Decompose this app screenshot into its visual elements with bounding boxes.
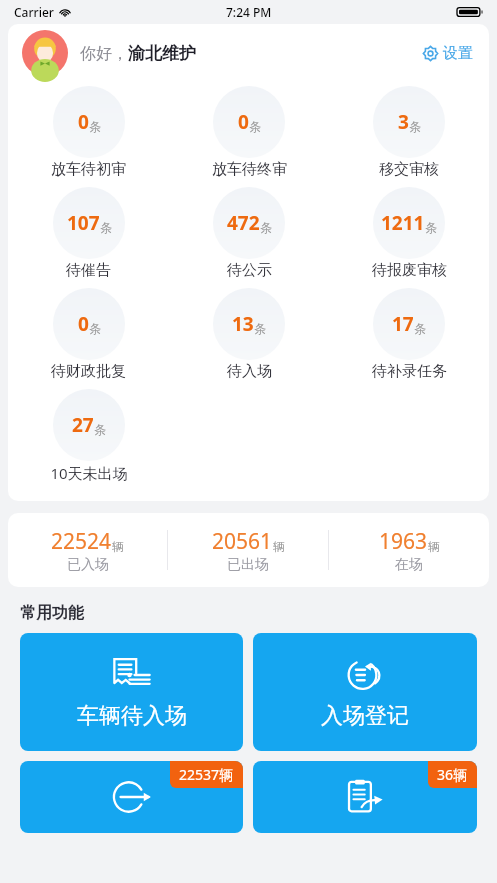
button[interactable]: 3 (329, 82, 489, 183)
staticText: 已入场 (67, 556, 109, 574)
staticText: 辆 (273, 539, 285, 554)
staticText: 条 (100, 220, 112, 235)
staticText: 设置 (443, 44, 473, 63)
button[interactable]: 0 (8, 284, 169, 385)
staticText: 3 (398, 109, 409, 135)
button[interactable]: 472 (169, 183, 329, 284)
staticText: 1963 (379, 527, 428, 556)
button[interactable]: 1211 (329, 183, 489, 284)
button[interactable]: 设置 (420, 40, 475, 67)
staticText: 107 (67, 210, 100, 236)
staticText: 条 (249, 119, 261, 134)
button[interactable]: 22524 (8, 527, 167, 574)
staticText: 条 (89, 321, 101, 336)
staticText: 你好， (80, 44, 128, 64)
staticText: 7:24 PM (226, 4, 272, 20)
staticText: 27 (72, 412, 94, 438)
staticText: 22524 (51, 527, 112, 556)
staticText: 待财政批复 (51, 362, 126, 381)
button[interactable]: 20561 (168, 527, 328, 574)
button[interactable]: 107 (8, 183, 169, 284)
staticText: 20561 (212, 527, 273, 556)
button[interactable]: 27 (8, 385, 169, 487)
staticText: 入场登记 (321, 702, 409, 730)
staticText: 条 (409, 119, 421, 134)
staticText: 0 (78, 311, 89, 337)
staticText: 待催告 (66, 261, 111, 280)
button[interactable]: 17 (329, 284, 489, 385)
staticText: 条 (260, 220, 272, 235)
staticText: 条 (414, 321, 426, 336)
button[interactable]: Function 36辆 (253, 761, 477, 833)
staticText: 待公示 (227, 261, 272, 280)
staticText: 在场 (395, 556, 423, 574)
staticText: 条 (89, 119, 101, 134)
staticText: 放车待初审 (51, 160, 126, 179)
staticText: 待补录任务 (372, 362, 447, 381)
staticText: 条 (425, 220, 437, 235)
staticText: 22537辆 (179, 765, 234, 784)
staticText: 移交审核 (379, 160, 439, 179)
staticText: 1211 (381, 210, 425, 236)
staticText: 车辆待入场 (77, 702, 187, 730)
button[interactable]: 0 (8, 82, 169, 183)
staticText: 已出场 (227, 556, 269, 574)
staticText: 条 (94, 422, 106, 437)
staticText: 待报废审核 (372, 261, 447, 280)
button[interactable]: 0 (169, 82, 329, 183)
staticText: 待入场 (227, 362, 272, 381)
staticText: 渝北维护 (128, 43, 196, 64)
staticText: 0 (78, 109, 89, 135)
staticText: 472 (227, 210, 260, 236)
staticText: 放车待终审 (212, 160, 287, 179)
staticText: 辆 (428, 539, 440, 554)
button[interactable]: 13 (169, 284, 329, 385)
staticText: 13 (232, 311, 254, 337)
staticText: 条 (254, 321, 266, 336)
button[interactable]: 1963 (329, 527, 489, 574)
staticText: 0 (238, 109, 249, 135)
button[interactable]: Function 22537辆 (20, 761, 243, 833)
staticText: 常用功能 (20, 603, 84, 623)
button[interactable]: 车辆待入场 (20, 633, 243, 751)
staticText: 17 (392, 311, 414, 337)
staticText: 36辆 (437, 765, 468, 784)
staticText: Carrier (14, 4, 54, 20)
staticText: 辆 (112, 539, 124, 554)
button[interactable]: 入场登记 (253, 633, 477, 751)
staticText: 10天未出场 (50, 463, 128, 483)
